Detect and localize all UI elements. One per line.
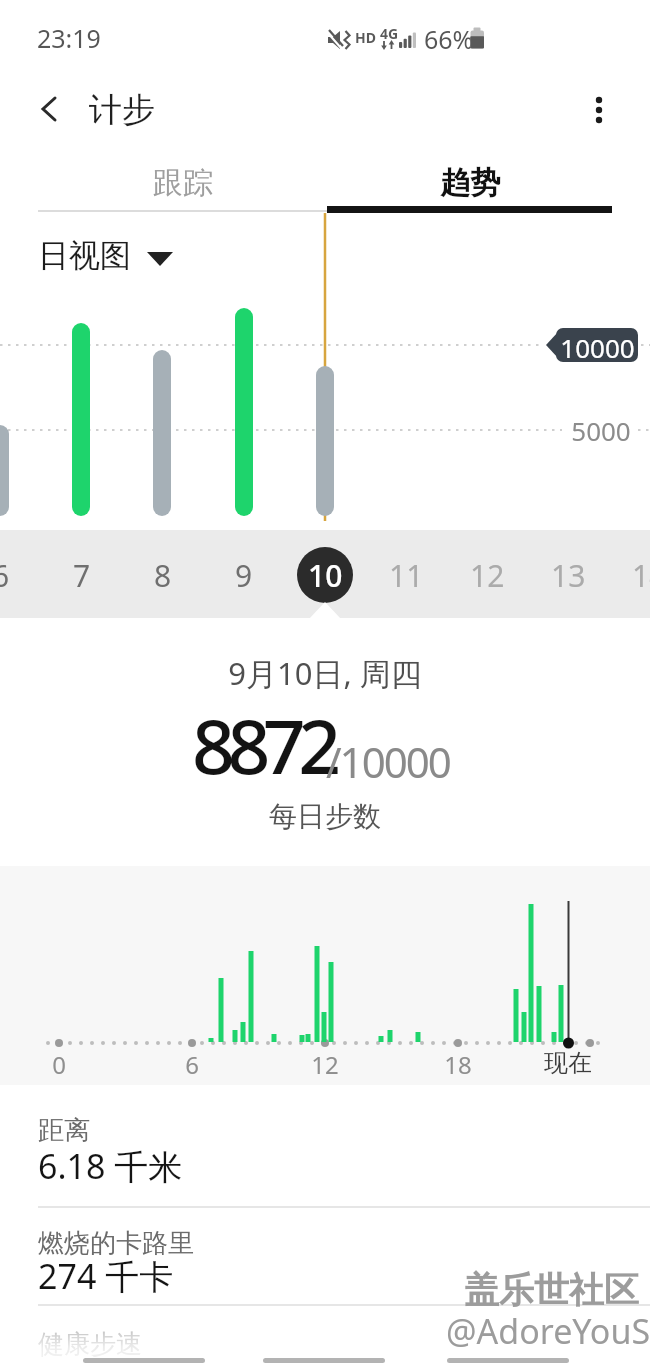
staticText: 跟踪 <box>153 164 213 202</box>
button[interactable]: 趋势 <box>327 160 612 213</box>
button[interactable] <box>447 1358 569 1363</box>
staticText: 14 <box>632 555 650 596</box>
staticText: 9 <box>235 555 253 596</box>
staticText: 18 <box>444 1048 472 1081</box>
staticText: HD <box>355 28 376 47</box>
staticText: 6.18 千米 <box>38 1143 183 1189</box>
button[interactable]: 14 <box>619 541 650 609</box>
staticText: 8 <box>154 555 172 596</box>
button[interactable]: 11 <box>376 541 436 609</box>
button[interactable]: 跟踪 <box>38 160 327 213</box>
staticText: 11 <box>389 555 424 596</box>
button[interactable] <box>0 1100 650 1206</box>
staticText: 23:19 <box>37 21 101 55</box>
staticText: 12 <box>311 1048 339 1081</box>
staticText: 66% <box>424 22 474 56</box>
button[interactable]: 12 <box>457 541 517 609</box>
button[interactable] <box>26 86 72 132</box>
staticText: @AdoreYouS <box>446 1308 650 1354</box>
staticText: 5000 <box>571 413 631 448</box>
staticText: 健康步速 <box>38 1328 142 1361</box>
staticText: 9月10日, 周四 <box>228 652 422 694</box>
button[interactable] <box>83 1358 205 1363</box>
button[interactable]: 10 <box>297 547 353 603</box>
staticText: 8872 <box>192 694 334 796</box>
button[interactable]: 7 <box>52 541 112 609</box>
staticText: 10 <box>308 555 343 596</box>
staticText: 计步 <box>89 89 155 131</box>
button[interactable] <box>0 1208 650 1304</box>
staticText: 盖乐世社区 <box>464 1268 639 1312</box>
button[interactable]: 8 <box>133 541 193 609</box>
staticText: 现在 <box>544 1048 592 1078</box>
staticText: 13 <box>551 555 586 596</box>
staticText: 燃烧的卡路里 <box>38 1227 194 1260</box>
staticText: 12 <box>470 555 505 596</box>
staticText: 距离 <box>38 1114 90 1147</box>
staticText: 日视图 <box>38 236 131 275</box>
button[interactable] <box>578 86 622 132</box>
staticText: 7 <box>73 555 91 596</box>
staticText: 0 <box>52 1048 66 1081</box>
button[interactable]: 日视图 <box>38 236 178 278</box>
staticText: /10000 <box>326 733 450 790</box>
staticText: 6 <box>185 1048 199 1081</box>
button[interactable]: 9 <box>214 541 274 609</box>
staticText: 10000 <box>560 330 635 365</box>
staticText: 274 千卡 <box>38 1253 174 1299</box>
staticText: 6 <box>0 555 10 596</box>
button[interactable]: 6 <box>0 541 31 609</box>
staticText: 每日步数 <box>269 799 381 834</box>
button[interactable] <box>263 1358 385 1363</box>
button[interactable]: 13 <box>538 541 598 609</box>
staticText: 趋势 <box>440 164 500 202</box>
staticText: 4G <box>380 24 399 43</box>
